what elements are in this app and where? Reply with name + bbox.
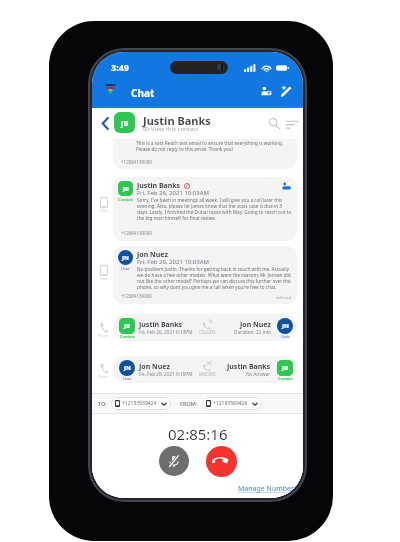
staticText: +12193589426 (213, 400, 248, 407)
button[interactable]: +12153939424 (115, 397, 167, 410)
staticText: +12684139009 (121, 293, 152, 299)
staticText: JN (122, 254, 129, 262)
staticText: Contact (278, 376, 293, 381)
staticText: This is a vast Reach test email to ensur… (136, 140, 284, 146)
staticText: JN (282, 322, 289, 330)
staticText: No problem Justin. Thanks for getting ba… (137, 266, 293, 290)
staticText: JB (123, 185, 129, 193)
staticText: +12153939424 (122, 400, 157, 407)
staticText: Text (100, 208, 107, 213)
staticText: Fri, Feb 26, 2021 6:13PM (139, 329, 193, 335)
staticText: Contact (120, 334, 135, 339)
staticText: Jon Nuez (139, 362, 170, 372)
button[interactable]: This is a vast Reach test email to ensur… (113, 139, 297, 169)
staticText: Jon Nuez (137, 250, 168, 260)
staticText: Duration: 22 min (234, 329, 271, 335)
staticText: JB (121, 118, 129, 128)
staticText: CALLED (199, 329, 216, 335)
staticText: Justin Banks (227, 362, 271, 372)
staticText: Phone (98, 374, 109, 379)
button[interactable]: Back (97, 115, 113, 131)
staticText: Chat (131, 86, 155, 100)
button[interactable]: Unmute microphone (159, 446, 189, 476)
staticText: JB (124, 322, 130, 330)
staticText: View this contact (151, 125, 199, 133)
button[interactable]: JB (113, 177, 297, 241)
button[interactable]: Filter (284, 116, 300, 132)
button[interactable]: End call (206, 446, 237, 477)
staticText: Fri, Feb 26, 2021 10:03AM (137, 258, 209, 266)
staticText: MISSED (199, 371, 216, 377)
staticText: FROM: (180, 400, 198, 407)
staticText: +12684139009 (121, 159, 152, 165)
staticText: Phone (98, 333, 109, 338)
button[interactable]: +12193589426 (206, 397, 258, 410)
staticText: User (123, 376, 132, 381)
staticText: Fri, Feb 26, 2021 10:03AM (137, 189, 209, 197)
button[interactable]: JB (113, 314, 297, 341)
button[interactable]: Compose message (276, 81, 296, 101)
staticText: Text (100, 276, 107, 281)
button[interactable]: JN (113, 356, 297, 383)
staticText: User (281, 334, 290, 339)
staticText: JB (282, 364, 288, 372)
staticText: delivered (276, 295, 292, 300)
staticText: Please do not reply to this email. Thank… (136, 146, 233, 152)
staticText: Fri, Feb 26, 2021 9:15PM (139, 371, 193, 377)
staticText: 02:85:16 (168, 424, 228, 444)
button[interactable]: Search (267, 116, 281, 130)
staticText: Justin Banks (137, 181, 181, 191)
button[interactable]: Caller info (280, 180, 292, 192)
staticText: Justin Banks (143, 113, 211, 128)
button[interactable]: Manage Numbers (238, 484, 298, 494)
staticText: Jon Nuez (240, 320, 271, 330)
staticText: User (118, 266, 133, 271)
staticText: +12684139009 (121, 230, 152, 236)
staticText: 3:49 (111, 61, 129, 73)
staticText: Contact (118, 197, 133, 202)
staticText: No Answer (246, 371, 271, 377)
staticText: JN (124, 364, 131, 372)
staticText: TO: (98, 400, 107, 407)
button[interactable]: View this contact (143, 125, 199, 133)
button[interactable]: JN (113, 246, 297, 304)
staticText: Sorry, I've been in meetings all week. I… (137, 197, 293, 221)
button[interactable]: Contacts (256, 81, 276, 101)
staticText: Justin Banks (139, 320, 183, 330)
